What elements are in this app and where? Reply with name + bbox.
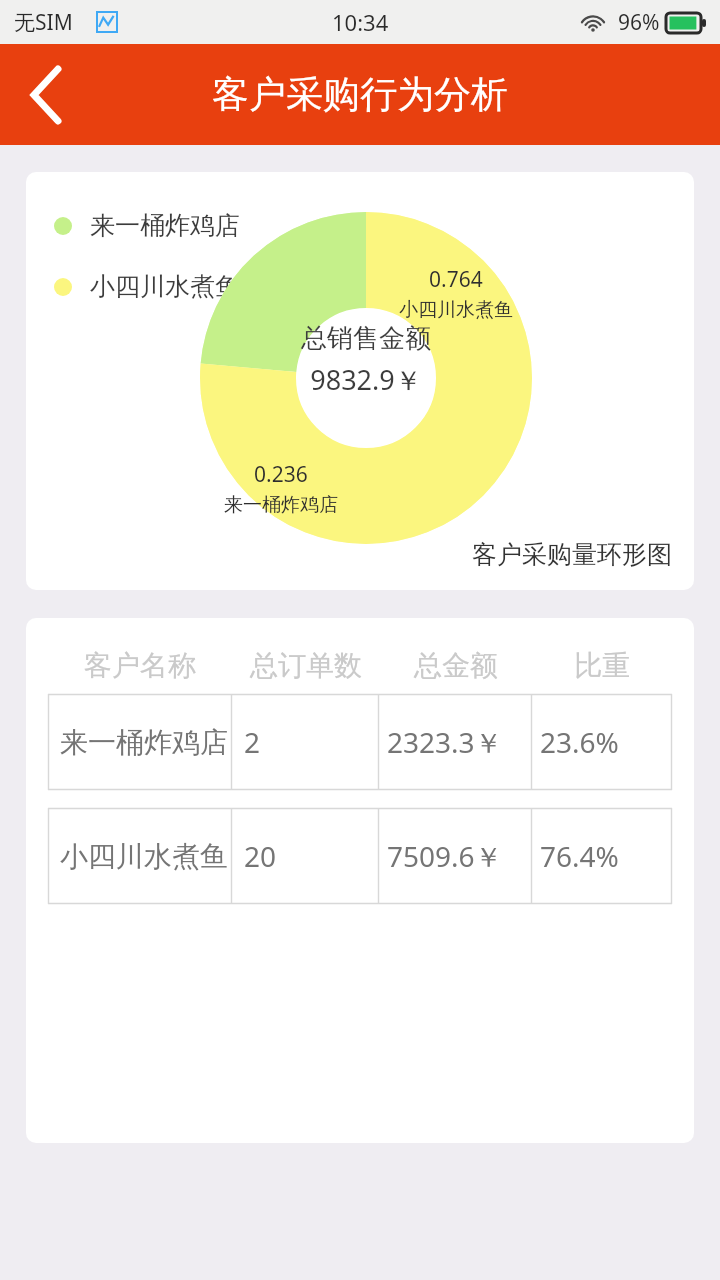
staticText: 96%: [618, 8, 660, 37]
staticText: 9832.9￥: [310, 361, 422, 398]
staticText: 客户名称: [84, 648, 196, 683]
button[interactable]: Back: [0, 44, 92, 145]
staticText: 23.6%: [540, 723, 619, 761]
staticText: 总销售金额: [301, 322, 431, 355]
staticText: 小四川水煮鱼: [60, 839, 228, 874]
staticText: 0.764: [429, 265, 483, 294]
staticText: 总金额: [414, 648, 498, 683]
staticText: 来一桶炸鸡店: [90, 210, 240, 241]
staticText: 10:34: [332, 7, 389, 37]
staticText: 小四川水煮鱼: [399, 298, 513, 322]
staticText: 无SIM: [14, 8, 73, 37]
staticText: 76.4%: [540, 837, 619, 875]
staticText: 0.236: [254, 460, 308, 489]
staticText: 客户采购量环形图: [472, 539, 672, 570]
staticText: 小四川水煮鱼: [90, 271, 240, 302]
staticText: 客户采购行为分析: [212, 71, 508, 118]
staticText: 2323.3￥: [387, 723, 503, 761]
staticText: 7509.6￥: [387, 837, 503, 875]
staticText: 来一桶炸鸡店: [224, 493, 338, 517]
staticText: 比重: [574, 648, 630, 683]
staticText: 20: [244, 837, 277, 875]
staticText: 总订单数: [250, 648, 362, 683]
staticText: 2: [244, 723, 261, 761]
staticText: 来一桶炸鸡店: [60, 725, 228, 760]
